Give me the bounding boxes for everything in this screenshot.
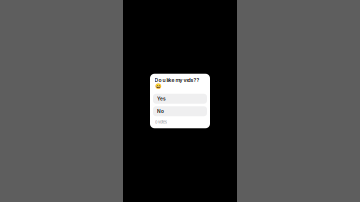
- button[interactable]: No: [153, 106, 207, 116]
- staticText: 0 votes: [155, 120, 167, 124]
- staticText: No: [157, 108, 164, 114]
- staticText: Do u like my vids??: [154, 77, 199, 83]
- staticText: Yes: [157, 96, 166, 102]
- staticText: 😀: [154, 83, 161, 89]
- button[interactable]: Yes: [153, 94, 207, 104]
